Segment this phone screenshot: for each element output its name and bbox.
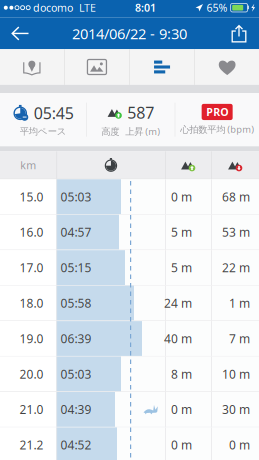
staticText: PRO xyxy=(206,105,228,119)
staticText: 22 m xyxy=(222,260,250,276)
staticText: docomo xyxy=(30,1,73,15)
staticText: 10 m xyxy=(222,366,250,382)
staticText: 05:15 xyxy=(60,260,91,276)
staticText: 04:39 xyxy=(60,401,91,417)
staticText: 24 m xyxy=(164,295,192,311)
staticText: 0 m xyxy=(171,401,192,417)
button[interactable]: Splits xyxy=(130,49,194,85)
staticText: 40 m xyxy=(164,331,192,346)
staticText: 20.0 xyxy=(19,366,43,382)
button[interactable]: Share xyxy=(219,18,259,49)
staticText: 0 m xyxy=(229,437,250,453)
staticText: 04:52 xyxy=(60,437,91,453)
staticText: 心拍数平均 (bpm) xyxy=(180,123,254,135)
button[interactable]: Favorite xyxy=(195,49,259,85)
staticText: 30 m xyxy=(222,401,250,417)
staticText: 587 xyxy=(127,102,154,123)
staticText: 0 m xyxy=(171,189,192,205)
staticText: 17.0 xyxy=(19,260,43,276)
staticText: 2014/06/22 - 9:30 xyxy=(72,24,187,43)
staticText: 0 m xyxy=(171,437,192,453)
staticText: 高度 上昇 (m) xyxy=(101,125,160,137)
staticText: 16.0 xyxy=(19,224,43,240)
staticText: 06:39 xyxy=(60,331,91,346)
staticText: 5 m xyxy=(171,224,192,240)
staticText: 15.0 xyxy=(19,189,43,205)
button[interactable]: Back xyxy=(0,18,40,49)
staticText: 平均ペース xyxy=(20,125,67,137)
staticText: 21.0 xyxy=(19,401,43,417)
staticText: 8:01 xyxy=(135,1,156,15)
staticText: 21.2 xyxy=(19,437,43,453)
staticText: 05:45 xyxy=(34,102,74,123)
staticText: 19.0 xyxy=(19,331,43,346)
staticText: 18.0 xyxy=(19,295,43,311)
staticText: 7 m xyxy=(229,331,250,346)
staticText: 53 m xyxy=(222,224,250,240)
staticText: 05:03 xyxy=(60,366,91,382)
staticText: 5 m xyxy=(171,260,192,276)
button[interactable]: Photos xyxy=(65,49,129,85)
staticText: 8 m xyxy=(171,366,192,382)
staticText: 1 m xyxy=(229,295,250,311)
staticText: 05:58 xyxy=(60,295,91,311)
staticText: 68 m xyxy=(222,189,250,205)
staticText: 65% xyxy=(204,1,228,15)
staticText: 05:03 xyxy=(60,189,91,205)
staticText: 04:57 xyxy=(60,224,91,240)
staticText: km xyxy=(20,158,36,172)
staticText: LTE xyxy=(73,1,96,15)
button[interactable]: Map xyxy=(0,49,64,85)
